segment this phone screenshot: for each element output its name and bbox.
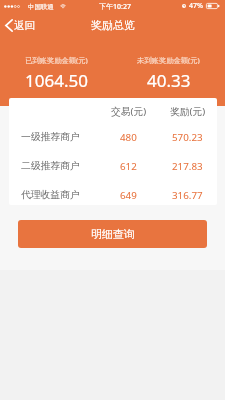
staticText: 代理收益商户	[21, 189, 80, 201]
staticText: 奖励总览	[91, 18, 135, 32]
button[interactable]: 返回	[0, 16, 42, 35]
staticText: 1064.50	[25, 69, 88, 92]
staticText: 未到账奖励金额(元)	[137, 55, 200, 64]
staticText: 明细查询	[91, 227, 135, 241]
staticText: 下午10:27	[99, 2, 131, 12]
staticText: 217.83	[172, 160, 203, 173]
staticText: 40.33	[147, 69, 191, 92]
staticText: 612	[120, 160, 137, 173]
staticText: 返回	[14, 19, 36, 32]
staticText: 480	[120, 131, 137, 144]
staticText: 649	[120, 189, 137, 202]
staticText: 中国联通	[28, 3, 54, 11]
staticText: 奖励(元)	[170, 105, 206, 118]
staticText: 一级推荐商户	[21, 131, 80, 143]
staticText: 已到账奖励金额(元)	[25, 55, 88, 64]
button[interactable]: 明细查询	[18, 220, 207, 248]
staticText: 二级推荐商户	[21, 160, 80, 172]
staticText: 交易(元)	[111, 105, 147, 118]
staticText: 570.23	[172, 131, 203, 144]
staticText: 316.77	[172, 189, 203, 202]
staticText: 47%	[189, 1, 203, 11]
